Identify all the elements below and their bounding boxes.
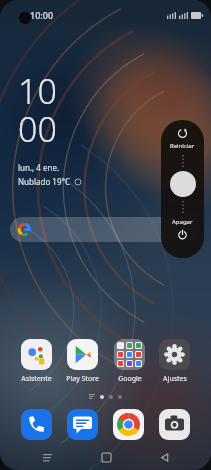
button[interactable]: Asistente: [21, 339, 52, 384]
button[interactable]: Play Store: [66, 339, 99, 384]
button[interactable]: Ajustes: [159, 339, 190, 384]
button[interactable]: Reiniciar: [170, 128, 195, 150]
staticText: lun., 4 ene.: [18, 162, 60, 173]
staticText: 00: [18, 106, 57, 152]
button[interactable]: Google: [114, 339, 145, 384]
staticText: Asistente: [21, 374, 52, 384]
staticText: 10: [18, 68, 57, 114]
button[interactable]: Atrás: [153, 446, 175, 468]
button[interactable]: Chrome: [113, 409, 144, 440]
staticText: Nublado 19°C: [18, 176, 70, 187]
staticText: Ajustes: [163, 374, 187, 384]
button[interactable]: Cámara: [159, 409, 190, 440]
staticText: Google: [118, 374, 142, 384]
button[interactable]: Mensajes: [67, 409, 98, 440]
button[interactable]: Apagar: [172, 218, 193, 240]
button[interactable]: Teléfono: [21, 409, 52, 440]
staticText: 10:00: [30, 9, 54, 21]
staticText: Play Store: [66, 374, 99, 384]
staticText: Apagar: [172, 218, 193, 226]
button[interactable]: Buscar con Google: [10, 217, 201, 242]
button[interactable]: Inicio: [95, 446, 117, 468]
button[interactable]: Deslizar para apagar: [170, 171, 196, 197]
button[interactable]: Recientes: [36, 446, 58, 468]
staticText: Reiniciar: [170, 142, 195, 150]
